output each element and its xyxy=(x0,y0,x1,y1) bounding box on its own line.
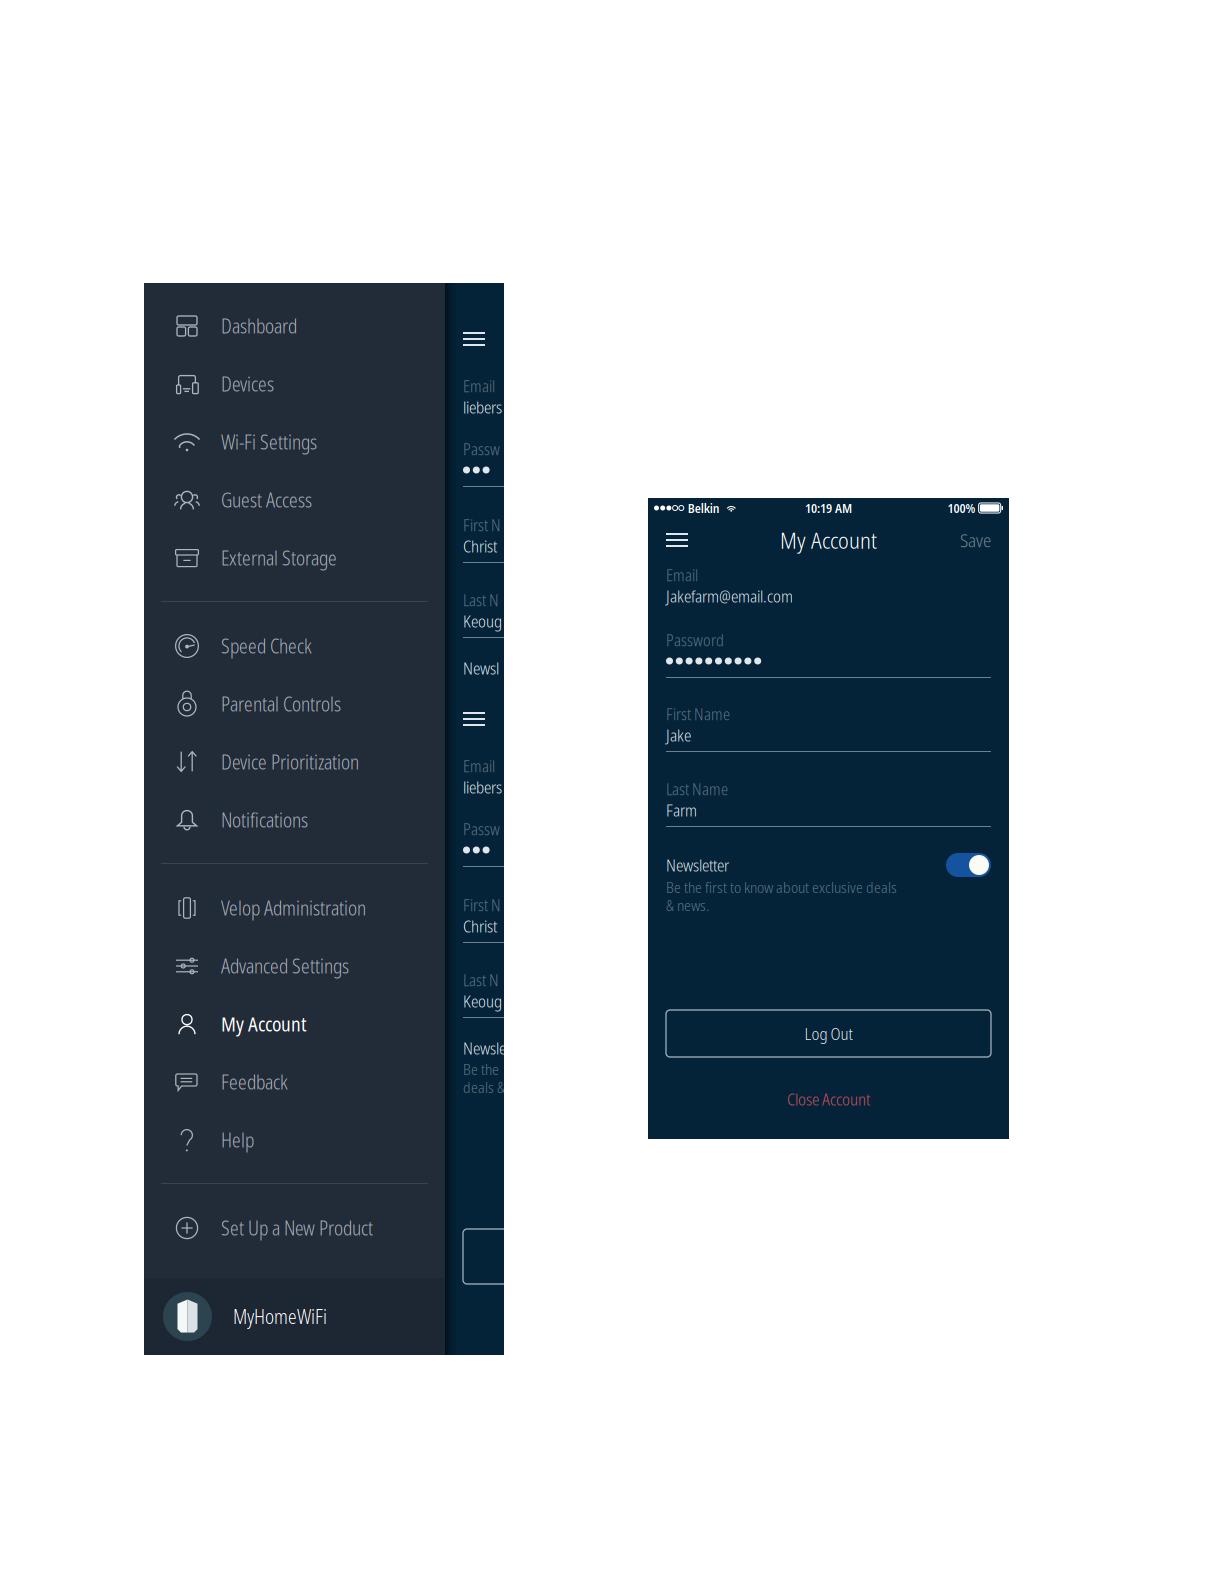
staticText: Notifications xyxy=(221,807,308,833)
staticText: Log Out xyxy=(804,1022,852,1045)
staticText: Newsle xyxy=(463,1037,506,1059)
staticText: First N xyxy=(463,894,501,916)
button[interactable]: Speed Check xyxy=(144,617,445,675)
staticText: 100% xyxy=(948,499,976,517)
staticText: Christ xyxy=(463,915,497,937)
staticText: Velop Administration xyxy=(221,895,366,921)
button[interactable]: My Account xyxy=(144,995,445,1053)
button[interactable]: Notifications xyxy=(144,791,445,849)
staticText: Set Up a New Product xyxy=(221,1215,373,1241)
staticText: liebers xyxy=(463,396,502,418)
button[interactable]: Feedback xyxy=(144,1053,445,1111)
staticText: My Account xyxy=(221,1011,307,1037)
button[interactable]: Device Prioritization xyxy=(144,733,445,791)
staticText: liebers xyxy=(463,776,502,798)
button[interactable]: Menu xyxy=(463,712,485,726)
staticText: Passw xyxy=(463,438,500,460)
staticText: Jakefarm@email.com xyxy=(666,585,793,607)
button[interactable]: Log Out xyxy=(666,1010,991,1057)
staticText: External Storage xyxy=(221,545,337,571)
staticText: Save xyxy=(960,527,991,553)
staticText: Be the xyxy=(463,1059,499,1079)
button[interactable]: Menu xyxy=(666,521,710,559)
button[interactable]: Menu xyxy=(463,332,485,346)
staticText: My Account xyxy=(780,525,877,555)
staticText: Device Prioritization xyxy=(221,749,359,775)
staticText: Speed Check xyxy=(221,633,312,659)
button[interactable]: Save xyxy=(947,521,991,559)
staticText: Newsletter xyxy=(666,854,729,876)
button[interactable]: External Storage xyxy=(144,529,445,587)
staticText: Farm xyxy=(666,799,697,821)
button[interactable]: MyHomeWiFi xyxy=(144,1278,445,1355)
staticText: & news. xyxy=(666,895,709,915)
button[interactable]: Help xyxy=(144,1111,445,1169)
staticText: Help xyxy=(221,1127,254,1153)
staticText: Passw xyxy=(463,818,500,840)
staticText: Dashboard xyxy=(221,313,297,339)
staticText: MyHomeWiFi xyxy=(233,1303,327,1330)
staticText: Newsl xyxy=(463,657,499,679)
staticText: deals & xyxy=(463,1077,505,1097)
button[interactable]: Devices xyxy=(144,355,445,413)
button[interactable]: Wi-Fi Settings xyxy=(144,413,445,471)
staticText: Belkin xyxy=(688,499,720,517)
button[interactable]: Velop Administration xyxy=(144,879,445,937)
staticText: Close Account xyxy=(787,1088,870,1110)
staticText: Jake xyxy=(666,724,691,746)
staticText: Email xyxy=(666,564,698,586)
staticText: Keoug xyxy=(463,990,502,1012)
staticText: Email xyxy=(463,375,495,397)
button[interactable]: Guest Access xyxy=(144,471,445,529)
staticText: Last N xyxy=(463,589,499,611)
staticText: Advanced Settings xyxy=(221,953,349,979)
staticText: Wi-Fi Settings xyxy=(221,429,317,455)
staticText: First Name xyxy=(666,703,730,725)
staticText: First N xyxy=(463,514,501,536)
staticText: 10:19 AM xyxy=(805,499,852,517)
button[interactable]: Newsletter toggle xyxy=(946,853,991,877)
staticText: Christ xyxy=(463,535,497,557)
staticText: Be the first to know about exclusive dea… xyxy=(666,877,897,897)
staticText: Guest Access xyxy=(221,487,312,513)
staticText: Keoug xyxy=(463,610,502,632)
staticText: Password xyxy=(666,629,724,651)
staticText: Last Name xyxy=(666,778,728,800)
staticText: Last N xyxy=(463,969,499,991)
staticText: Parental Controls xyxy=(221,691,341,717)
staticText: Email xyxy=(463,755,495,777)
button[interactable]: Parental Controls xyxy=(144,675,445,733)
staticText: Devices xyxy=(221,371,274,397)
button[interactable]: Advanced Settings xyxy=(144,937,445,995)
button[interactable]: Close Account xyxy=(666,1088,991,1110)
button[interactable]: Set Up a New Product xyxy=(144,1199,445,1257)
staticText: Feedback xyxy=(221,1069,288,1095)
button[interactable]: Dashboard xyxy=(144,297,445,355)
